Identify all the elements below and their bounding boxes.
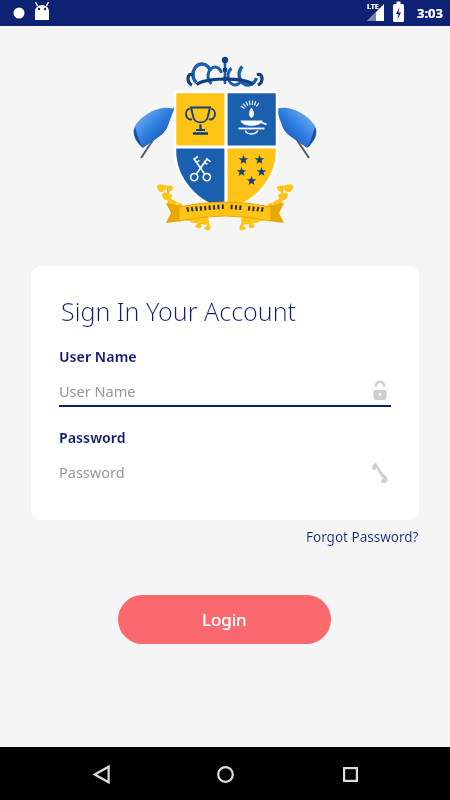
staticText: Forgot Password? bbox=[306, 528, 419, 546]
staticText: Login bbox=[202, 608, 247, 631]
staticText: Sign In Your Account bbox=[61, 294, 297, 328]
staticText: User Name bbox=[59, 347, 137, 366]
staticText: Password bbox=[59, 462, 125, 482]
button[interactable]: User Name bbox=[59, 375, 391, 407]
button[interactable]: Back bbox=[77, 750, 125, 798]
button[interactable]: Home bbox=[201, 750, 249, 798]
button[interactable]: Password bbox=[59, 456, 391, 488]
staticText: LTE bbox=[367, 2, 379, 12]
staticText: User Name bbox=[59, 381, 136, 401]
button[interactable]: Recent apps bbox=[326, 750, 374, 798]
staticText: 3:03 bbox=[417, 4, 443, 22]
staticText: Password bbox=[59, 428, 126, 447]
button[interactable]: Forgot Password? bbox=[300, 524, 425, 550]
button[interactable]: Login bbox=[118, 595, 331, 644]
